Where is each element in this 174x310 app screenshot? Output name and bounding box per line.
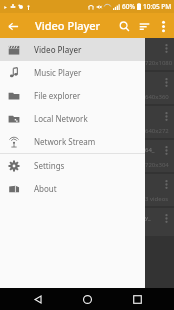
staticText: 640x360 <box>145 93 169 101</box>
staticText: y_ <box>145 214 151 222</box>
staticText: About <box>34 183 57 194</box>
button[interactable]: File explorer <box>0 84 145 107</box>
button[interactable]: Back <box>26 288 50 310</box>
staticText: Video Player <box>35 18 101 33</box>
button[interactable]: Recents <box>125 288 149 310</box>
staticText: 3 videos <box>145 195 169 203</box>
staticText: Local Network <box>34 113 88 124</box>
staticText: 60% <box>122 2 135 11</box>
button[interactable]: About <box>0 177 145 200</box>
button[interactable]: Home <box>75 288 99 310</box>
staticText: 720x304 <box>145 161 169 169</box>
staticText: Settings <box>34 160 65 171</box>
button[interactable]: More options <box>154 17 172 35</box>
button[interactable]: Network Stream <box>0 130 145 153</box>
staticText: Music Player <box>34 67 82 78</box>
staticText: 640x272 <box>145 127 169 135</box>
button[interactable]: Settings <box>0 154 145 177</box>
staticText: 720x1080 <box>145 59 173 67</box>
button[interactable]: Sort <box>134 16 154 36</box>
button[interactable]: Search <box>114 16 134 36</box>
staticText: File explorer <box>34 90 81 101</box>
staticText: Video Player <box>34 44 82 55</box>
button[interactable]: Back <box>4 17 22 35</box>
staticText: 64_ <box>145 146 155 154</box>
button[interactable]: Local Network <box>0 107 145 130</box>
staticText: 10:05 PM <box>143 2 172 11</box>
button[interactable]: Video Player <box>0 38 145 61</box>
staticText: Network Stream <box>34 136 96 147</box>
button[interactable]: Music Player <box>0 61 145 84</box>
